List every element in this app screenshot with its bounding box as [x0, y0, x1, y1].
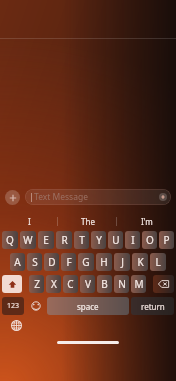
staticText: B [101, 277, 108, 291]
button[interactable]: B [97, 275, 112, 293]
button[interactable]: A [10, 253, 25, 271]
button[interactable]: Z [29, 275, 44, 293]
button[interactable]: 123 [2, 297, 24, 315]
button[interactable]: E [38, 231, 54, 249]
staticText: U [112, 233, 120, 247]
button[interactable]: Shift [2, 275, 22, 293]
button[interactable]: Q [2, 231, 18, 249]
staticText: I [28, 216, 31, 227]
staticText: I'm [141, 216, 153, 227]
button[interactable]: V [80, 275, 95, 293]
staticText: R [61, 233, 68, 247]
button[interactable]: Text Message [25, 189, 171, 205]
staticText: Text Message [34, 191, 88, 203]
button[interactable]: L [150, 253, 166, 271]
staticText: W [23, 233, 33, 247]
staticText: V [85, 277, 91, 291]
staticText: N [118, 277, 126, 291]
button[interactable]: D [44, 253, 59, 271]
button[interactable]: P [159, 231, 174, 249]
staticText: M [134, 277, 144, 291]
button[interactable]: return [131, 297, 174, 315]
staticText: L [155, 255, 161, 269]
button[interactable]: T [74, 231, 89, 249]
button[interactable]: W [20, 231, 36, 249]
staticText: Z [34, 277, 40, 291]
staticText: C [67, 277, 74, 291]
staticText: space [77, 301, 99, 312]
staticText: S [32, 255, 38, 269]
button[interactable]: Y [91, 231, 106, 249]
button[interactable]: The [58, 211, 117, 231]
staticText: D [48, 255, 56, 269]
staticText: The [81, 216, 95, 227]
button[interactable]: Emoji [26, 297, 45, 315]
staticText: return [141, 301, 165, 312]
staticText: J [121, 255, 124, 269]
button[interactable]: H [96, 253, 112, 271]
button[interactable]: I [0, 211, 58, 231]
button[interactable]: G [78, 253, 94, 271]
staticText: F [66, 255, 72, 269]
button[interactable]: R [56, 231, 72, 249]
button[interactable]: F [61, 253, 76, 271]
button[interactable]: N [114, 275, 129, 293]
button[interactable]: M [131, 275, 146, 293]
button[interactable]: S [27, 253, 42, 271]
staticText: X [51, 277, 57, 291]
staticText: K [137, 255, 144, 269]
staticText: O [146, 233, 154, 247]
button[interactable]: X [46, 275, 61, 293]
staticText: Y [96, 233, 102, 247]
button[interactable]: C [63, 275, 78, 293]
button[interactable]: K [132, 253, 148, 271]
staticText: G [82, 255, 90, 269]
button[interactable]: Send [158, 189, 168, 205]
button[interactable]: J [114, 253, 130, 271]
staticText: A [14, 255, 21, 269]
staticText: 123 [7, 301, 20, 311]
button[interactable]: Add attachment [5, 190, 20, 205]
button[interactable]: O [142, 231, 157, 249]
button[interactable]: Change keyboard [9, 318, 23, 332]
button[interactable]: I'm [117, 211, 176, 231]
staticText: P [163, 233, 170, 247]
button[interactable]: U [108, 231, 123, 249]
staticText: H [100, 255, 108, 269]
staticText: T [79, 233, 85, 247]
staticText: E [43, 233, 49, 247]
staticText: Q [6, 233, 14, 247]
button[interactable]: Backspace [153, 275, 174, 293]
button[interactable]: space [47, 297, 129, 315]
staticText: I [131, 233, 135, 247]
button[interactable]: I [125, 231, 140, 249]
